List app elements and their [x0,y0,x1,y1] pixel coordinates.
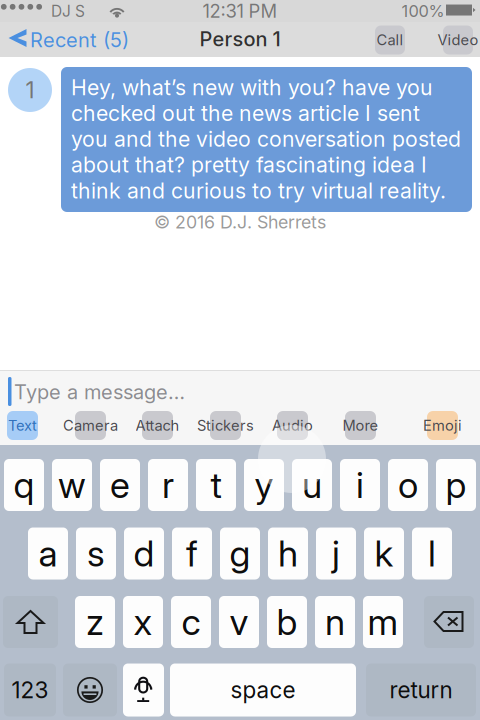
staticText: r [162,463,174,507]
button[interactable]: Delete [424,596,474,648]
staticText: l [428,532,436,575]
staticText: Call [376,31,403,49]
staticText: p [445,463,466,507]
button[interactable]: p [436,459,476,511]
button[interactable]: r [148,459,188,511]
staticText: x [133,600,152,644]
button[interactable]: Shift [3,596,58,648]
button[interactable]: o [388,459,428,511]
staticText: Audio [272,417,313,434]
button[interactable]: space [170,663,356,716]
staticText: Stickers [197,417,254,434]
staticText: n [325,600,345,644]
button[interactable]: Emoji [407,411,478,440]
staticText: a [38,532,57,575]
staticText: Recent (5) [30,28,129,52]
staticText: Text [8,417,37,434]
staticText: © 2016 D.J. Sherrets [154,211,326,233]
staticText: i [356,463,364,507]
button[interactable]: Attach [122,411,193,440]
button[interactable]: d [124,527,164,579]
button[interactable]: v [219,596,259,648]
button[interactable]: n [315,596,355,648]
staticText: k [374,532,393,575]
staticText: v [229,600,248,644]
staticText: More [342,417,378,434]
staticText: Camera [63,417,118,434]
staticText: y [254,463,273,507]
button[interactable]: return [366,663,476,716]
staticText: 100% [401,1,444,21]
button[interactable]: Camera [55,411,126,440]
button[interactable]: e [100,459,140,511]
staticText: q [13,463,34,507]
button[interactable]: Stickers [190,411,261,440]
staticText: Emoji [423,417,462,434]
staticText: j [332,532,340,575]
button[interactable]: w [52,459,92,511]
button[interactable]: j [316,527,356,579]
button[interactable]: y [244,459,284,511]
staticText: f [186,532,198,575]
button[interactable]: Video [429,25,480,54]
button[interactable]: Dictate [123,663,164,716]
button[interactable]: Text [0,411,58,440]
button[interactable]: l [412,527,452,579]
staticText: w [58,463,86,507]
staticText: 1 [25,76,34,104]
button[interactable]: c [171,596,211,648]
button[interactable]: x [123,596,163,648]
staticText: u [302,463,322,507]
button[interactable]: a [28,527,68,579]
staticText: h [278,532,298,575]
staticText: z [86,600,104,644]
staticText: g [229,532,250,575]
button[interactable]: s [76,527,116,579]
staticText: e [110,463,130,507]
staticText: d [133,532,154,575]
staticText: Person 1 [199,27,280,51]
button[interactable]: m [363,596,403,648]
button[interactable]: b [267,596,307,648]
button[interactable]: h [268,527,308,579]
staticText: Type a message… [14,380,185,404]
staticText: space [230,676,295,704]
staticText: b [276,600,297,644]
staticText: o [398,463,418,507]
staticText: Video [437,31,478,49]
button[interactable]: q [4,459,44,511]
button[interactable]: Recent (5) [4,24,136,56]
button[interactable]: t [196,459,236,511]
button[interactable]: z [75,596,115,648]
button[interactable]: Call [361,25,419,54]
staticText: s [87,532,105,575]
staticText: return [389,676,452,704]
button[interactable]: Audio [257,411,328,440]
staticText: Attach [135,417,179,434]
button[interactable]: f [172,527,212,579]
staticText: 123 [11,676,48,704]
staticText: DJ S [51,2,85,20]
button[interactable]: 123 [4,663,56,716]
staticText: m [367,600,398,644]
button[interactable]: k [364,527,404,579]
staticText: 12:31 PM [202,0,277,22]
staticText: Hey, what’s new with you? have you check… [71,74,461,204]
button[interactable]: g [220,527,260,579]
button[interactable]: More [325,411,396,440]
button[interactable]: Emoji keyboard [63,663,117,716]
button[interactable]: i [340,459,380,511]
button[interactable]: u [292,459,332,511]
staticText: t [210,463,221,507]
staticText: c [181,600,200,644]
